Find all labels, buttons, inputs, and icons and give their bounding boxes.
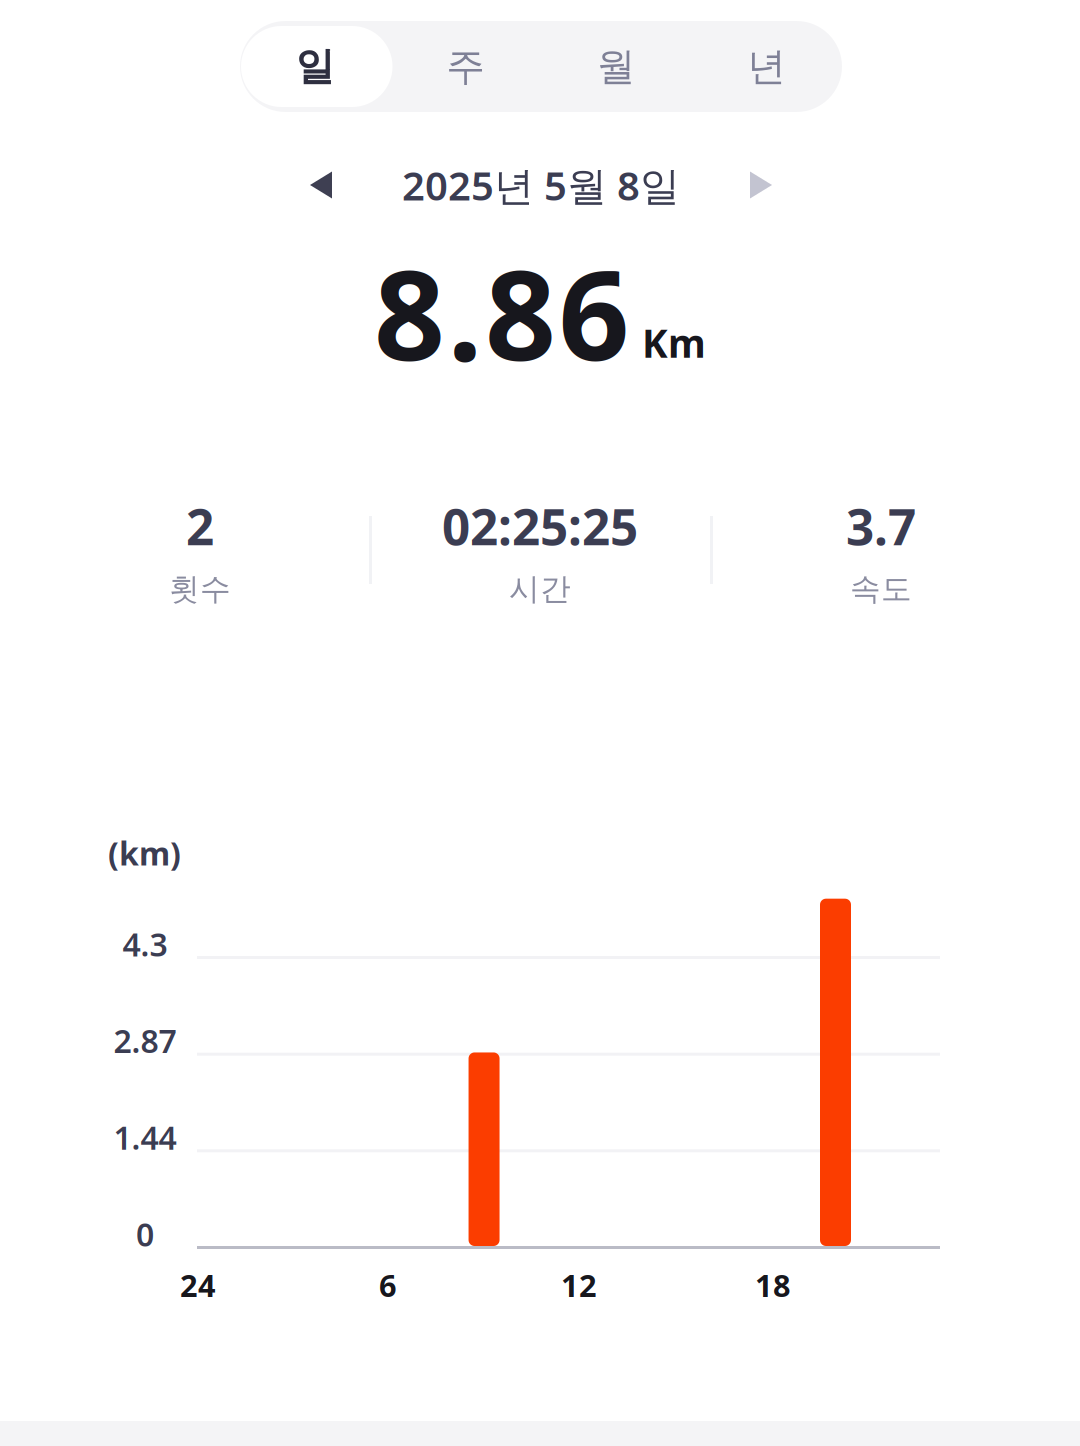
button[interactable]: 년 [691, 21, 842, 112]
button[interactable]: 월 [541, 21, 691, 112]
staticText: 주 [446, 43, 485, 90]
staticText: (km) [108, 832, 181, 874]
staticText: 2025년 5월 8일 [402, 158, 680, 211]
button[interactable]: Previous day [300, 159, 342, 211]
staticText: 2 [186, 493, 214, 559]
button[interactable]: Next day [740, 159, 782, 211]
staticText: 24 [180, 1265, 216, 1305]
staticText: 속도 [850, 570, 912, 608]
staticText: 년 [747, 43, 786, 90]
staticText: 6 [379, 1265, 397, 1305]
staticText: 시간 [509, 570, 571, 608]
staticText: 횟수 [169, 570, 231, 608]
staticText: 12 [561, 1265, 597, 1305]
staticText: 18 [755, 1265, 791, 1305]
staticText: 일 [296, 43, 335, 90]
staticText: 2.87 [113, 1019, 176, 1062]
button[interactable]: 일 [240, 21, 390, 112]
staticText: Km [642, 317, 706, 368]
staticText: 3.7 [846, 493, 916, 559]
staticText: 8.86 [374, 230, 629, 395]
staticText: 4.3 [122, 923, 167, 965]
staticText: 0 [136, 1213, 154, 1255]
staticText: 1.44 [113, 1116, 176, 1159]
staticText: 02:25:25 [442, 493, 638, 559]
staticText: 월 [597, 43, 636, 90]
button[interactable]: 주 [390, 21, 541, 112]
